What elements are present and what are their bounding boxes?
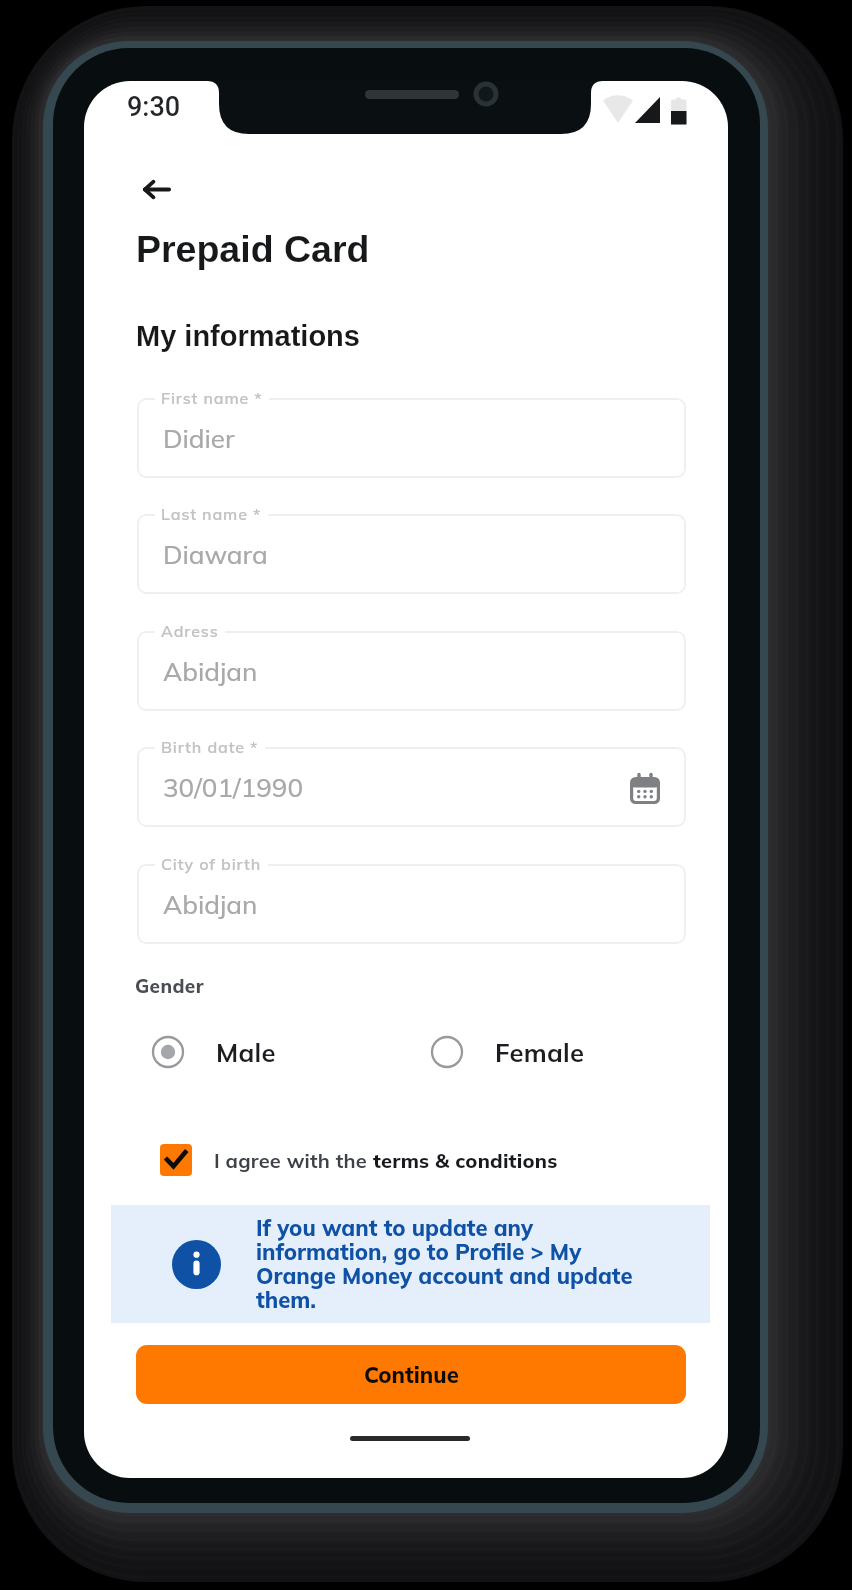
- button[interactable]: [137, 514, 686, 594]
- other: Information: [172, 1240, 221, 1289]
- button[interactable]: I agree with the: [160, 1142, 558, 1178]
- staticText: City of birth: [161, 854, 262, 874]
- staticText: If you want to update any information, g…: [256, 1214, 648, 1314]
- button[interactable]: [137, 864, 686, 944]
- staticText: Continue: [364, 1361, 459, 1389]
- staticText: Last name *: [161, 504, 262, 524]
- staticText: Abidjan: [163, 655, 258, 688]
- staticText: Gender: [135, 974, 204, 998]
- staticText: Abidjan: [163, 888, 258, 921]
- staticText: Birth date *: [161, 737, 259, 757]
- staticText: terms & conditions: [373, 1148, 558, 1173]
- button[interactable]: Continue: [136, 1345, 686, 1404]
- button[interactable]: Female: [430, 1035, 585, 1069]
- button[interactable]: Pick a date: [622, 766, 668, 812]
- staticText: Female: [495, 1036, 585, 1068]
- staticText: First name *: [161, 388, 263, 408]
- staticText: Didier: [163, 422, 235, 455]
- button[interactable]: [137, 398, 686, 478]
- button[interactable]: Male: [151, 1035, 276, 1069]
- staticText: Adress: [161, 621, 219, 641]
- staticText: Prepaid Card: [136, 228, 370, 270]
- staticText: I agree with the: [214, 1148, 373, 1173]
- staticText: 30/01/1990: [163, 771, 304, 804]
- button[interactable]: [137, 631, 686, 711]
- staticText: Male: [216, 1036, 276, 1068]
- staticText: Diawara: [163, 538, 268, 571]
- staticText: 9:30: [127, 91, 181, 123]
- staticText: My informations: [136, 320, 360, 352]
- button[interactable]: Back: [128, 166, 186, 212]
- button[interactable]: [137, 747, 686, 827]
- other: Wi-Fi, signal and battery status: [603, 97, 689, 125]
